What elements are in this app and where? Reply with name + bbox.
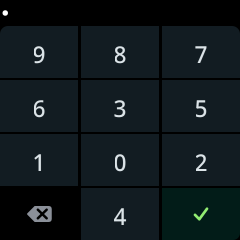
button[interactable]: 7: [162, 26, 240, 78]
staticText: 3: [113, 93, 126, 123]
button[interactable]: 6: [0, 80, 78, 132]
button[interactable]: 2: [162, 134, 240, 186]
button[interactable]: 0: [81, 134, 159, 186]
staticText: 0: [113, 147, 126, 177]
staticText: 5: [194, 93, 207, 123]
button[interactable]: Delete: [0, 188, 78, 240]
button[interactable]: 8: [81, 26, 159, 78]
button[interactable]: Confirm: [162, 188, 240, 240]
button[interactable]: 4: [81, 188, 159, 240]
staticText: 2: [194, 147, 207, 177]
button[interactable]: 5: [162, 80, 240, 132]
staticText: 1: [32, 147, 45, 177]
staticText: 6: [32, 93, 45, 123]
staticText: 7: [194, 39, 207, 69]
button[interactable]: 1: [0, 134, 78, 186]
staticText: 4: [113, 201, 126, 231]
button[interactable]: 3: [81, 80, 159, 132]
staticText: 8: [113, 39, 126, 69]
button[interactable]: 9: [0, 26, 78, 78]
staticText: 9: [32, 39, 45, 69]
